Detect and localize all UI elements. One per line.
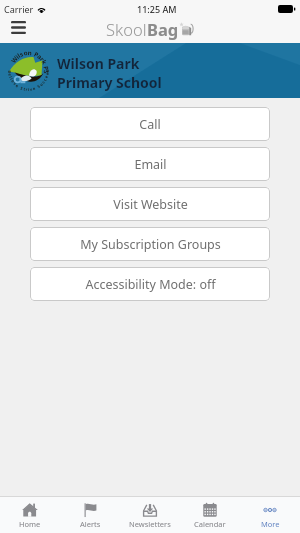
button[interactable]: Newsletters xyxy=(120,497,180,533)
staticText: Primary School xyxy=(57,73,162,92)
button[interactable]: Calendar xyxy=(180,497,240,533)
staticText: Accessibility Mode: off xyxy=(85,276,216,293)
button[interactable]: Accessibility Mode: off xyxy=(30,267,270,301)
button[interactable]: Alerts xyxy=(60,497,120,533)
button[interactable]: Email xyxy=(30,147,270,181)
staticText: Visit Website xyxy=(113,196,188,213)
staticText: More xyxy=(261,519,280,529)
staticText: Newsletters xyxy=(129,519,171,529)
button[interactable]: Visit Website xyxy=(30,187,270,221)
staticText: Calendar xyxy=(194,519,226,529)
staticText: 11:25 AM xyxy=(137,3,177,15)
staticText: Call xyxy=(139,116,161,133)
staticText: My Subscription Groups xyxy=(80,236,221,253)
staticText: Alerts xyxy=(80,519,101,529)
button[interactable]: My Subscription Groups xyxy=(30,227,270,261)
button[interactable]: Call xyxy=(30,107,270,141)
staticText: Bag xyxy=(147,18,179,40)
staticText: Skool xyxy=(106,18,147,40)
button[interactable]: Home xyxy=(0,497,60,533)
button[interactable]: Menu xyxy=(5,18,31,36)
staticText: Email xyxy=(134,156,167,173)
staticText: Home xyxy=(19,519,41,529)
staticText: Wilson Park xyxy=(57,54,140,73)
button[interactable]: More xyxy=(240,497,300,533)
staticText: Carrier xyxy=(4,3,34,15)
